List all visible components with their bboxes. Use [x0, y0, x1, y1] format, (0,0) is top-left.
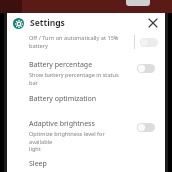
- staticText: Battery optimization: [29, 94, 97, 104]
- staticText: Adaptive brightness: [29, 119, 95, 129]
- button[interactable]: Battery percentage: [7, 60, 165, 86]
- button[interactable]: Toggle off: [137, 123, 155, 132]
- staticText: Optimize brightness level for available …: [29, 130, 123, 152]
- staticText: Settings: [30, 17, 65, 29]
- button[interactable]: Toggle off: [140, 38, 158, 47]
- button[interactable]: Sleep: [7, 159, 165, 172]
- button[interactable]: Battery optimization: [7, 94, 165, 110]
- other: Settings icon: [13, 18, 24, 29]
- button[interactable]: Off / Turn on automatically at 15% batte…: [7, 33, 165, 51]
- button[interactable]: Adaptive brightness: [7, 119, 165, 152]
- button[interactable]: Close: [146, 16, 160, 30]
- button[interactable]: Settings icon: [7, 13, 165, 33]
- staticText: Sleep: [29, 159, 47, 169]
- staticText: Battery percentage: [29, 60, 93, 70]
- staticText: Off / Turn on automatically at 15% batte…: [29, 34, 119, 49]
- staticText: Show battery percentage in status bar: [29, 71, 123, 86]
- button[interactable]: Toggle off: [137, 64, 155, 73]
